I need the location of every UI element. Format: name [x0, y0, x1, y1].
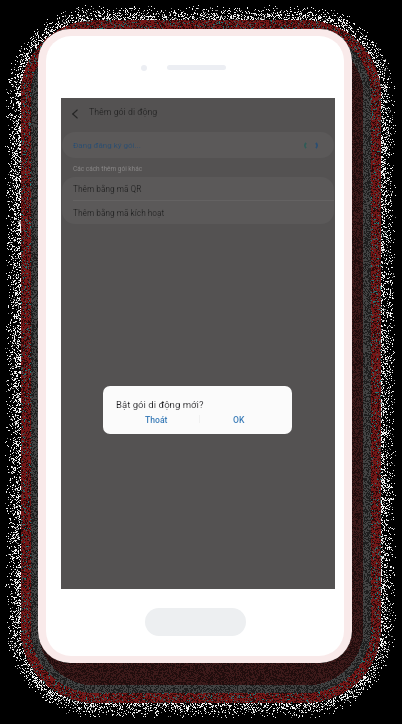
- button[interactable]: Thêm bằng mã kích hoạt: [62, 201, 334, 224]
- staticText: Thêm bằng mã QR: [73, 184, 142, 194]
- button[interactable]: Home: [145, 608, 246, 636]
- staticText: Thêm bằng mã kích hoạt: [73, 208, 165, 218]
- staticText: Đang đăng ký gói...: [73, 141, 141, 150]
- staticText: Thêm gói di động: [89, 107, 158, 117]
- staticText: Các cách thêm gói khác: [73, 165, 143, 173]
- button[interactable]: Đang đăng ký gói...: [62, 132, 334, 158]
- button[interactable]: OK: [233, 415, 259, 429]
- staticText: Bật gói di động mới?: [116, 399, 204, 410]
- button[interactable]: Back: [64, 103, 86, 125]
- button[interactable]: Thoát: [145, 415, 185, 429]
- button[interactable]: Thêm bằng mã QR: [62, 177, 334, 201]
